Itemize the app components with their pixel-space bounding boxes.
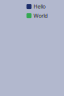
staticText: Hello: [33, 3, 45, 10]
staticText: World: [33, 12, 47, 19]
